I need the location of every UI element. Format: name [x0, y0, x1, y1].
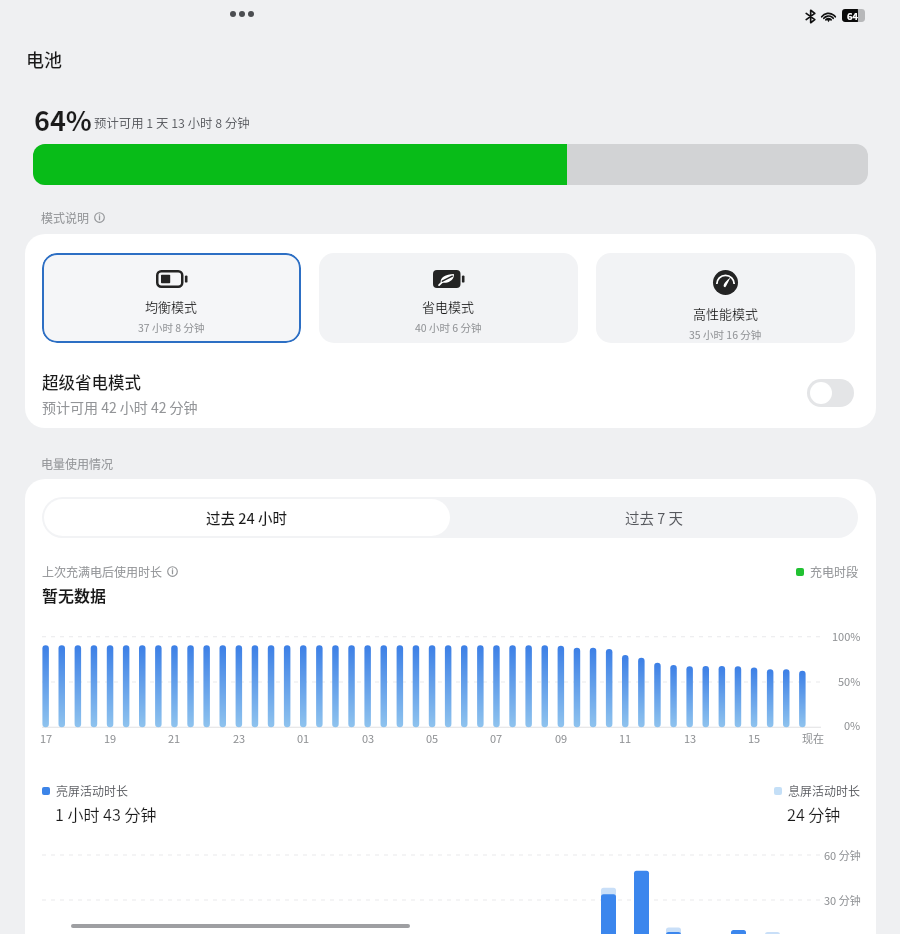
staticText: 40 小时 6 分钟: [415, 320, 482, 335]
staticText: 省电模式: [422, 297, 475, 316]
staticText: 现在: [802, 730, 824, 746]
staticText: 01: [297, 730, 310, 746]
staticText: 03: [362, 730, 375, 746]
staticText: 19: [104, 730, 117, 746]
staticText: 模式说明: [41, 209, 90, 226]
staticText: 息屏活动时长: [788, 782, 861, 799]
staticText: 1 小时 43 分钟: [55, 802, 157, 825]
staticText: 预计可用 42 小时 42 分钟: [42, 397, 198, 417]
staticText: 预计可用 1 天 13 小时 8 分钟: [94, 114, 250, 132]
other: Wi-Fi: [820, 9, 837, 22]
other: Bluetooth: [806, 10, 815, 23]
staticText: 电池: [26, 46, 62, 72]
staticText: 07: [490, 730, 503, 746]
staticText: 亮屏活动时长: [56, 782, 129, 799]
staticText: 均衡模式: [145, 297, 198, 316]
button[interactable]: 省电模式: [319, 253, 578, 343]
staticText: 高性能模式: [693, 304, 759, 323]
other: Battery 64 percent: [842, 9, 865, 22]
staticText: 100%: [832, 628, 861, 644]
staticText: 64: [847, 9, 859, 22]
staticText: 过去 24 小时: [206, 507, 288, 528]
button[interactable]: 过去 24 小时: [44, 499, 450, 536]
staticText: 13: [684, 730, 697, 746]
button[interactable]: 超级省电模式 开关: [807, 379, 854, 407]
staticText: 23: [233, 730, 246, 746]
staticText: 上次充满电后使用时长: [42, 563, 163, 580]
staticText: 24 分钟: [787, 802, 841, 825]
staticText: 电量使用情况: [41, 455, 114, 472]
staticText: 50%: [838, 673, 861, 689]
staticText: 05: [426, 730, 439, 746]
button[interactable]: 均衡模式: [42, 253, 301, 343]
staticText: 09: [555, 730, 568, 746]
staticText: 充电时段: [810, 563, 859, 580]
staticText: 超级省电模式: [42, 370, 141, 394]
staticText: 64%: [34, 100, 92, 139]
button[interactable]: 高性能模式: [596, 253, 855, 343]
staticText: 35 小时 16 分钟: [689, 327, 762, 342]
staticText: 0%: [844, 717, 861, 733]
staticText: 21: [168, 730, 181, 746]
button[interactable]: 超级省电模式: [25, 358, 876, 428]
staticText: 37 小时 8 分钟: [138, 320, 205, 335]
staticText: 11: [619, 730, 632, 746]
staticText: 暂无数据: [42, 583, 107, 606]
staticText: 60 分钟: [824, 847, 861, 863]
button[interactable]: 过去 7 天: [450, 497, 858, 538]
staticText: 过去 7 天: [625, 507, 684, 528]
staticText: 17: [40, 730, 53, 746]
staticText: 30 分钟: [824, 892, 861, 908]
staticText: 15: [748, 730, 761, 746]
